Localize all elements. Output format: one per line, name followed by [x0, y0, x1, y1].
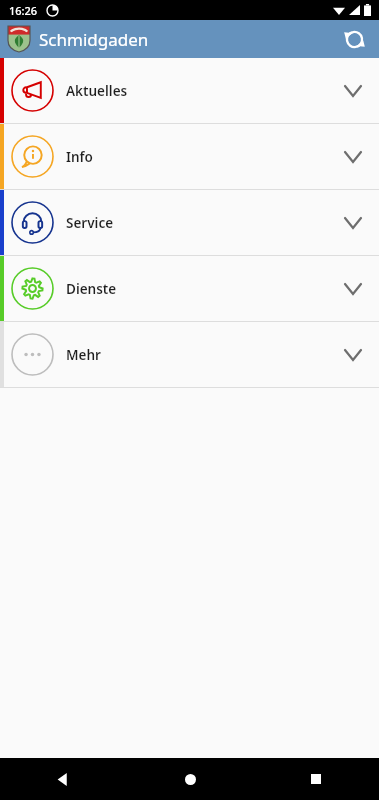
button[interactable]: Service	[0, 190, 379, 255]
button[interactable]: Startbildschirm	[127, 758, 253, 800]
staticText: Aktuelles	[66, 82, 128, 100]
staticText: Service	[66, 214, 114, 232]
button[interactable]: Info	[0, 124, 379, 189]
button[interactable]: Mehr	[0, 322, 379, 387]
button[interactable]: Aktualisieren	[337, 22, 371, 56]
staticText: Mehr	[66, 346, 101, 364]
button[interactable]: Übersicht	[253, 758, 379, 800]
button[interactable]: Zurück	[0, 758, 127, 800]
button[interactable]: Aktuelles	[0, 58, 379, 123]
staticText: Info	[66, 148, 93, 166]
staticText: Dienste	[66, 280, 117, 298]
staticText: 16:26	[9, 3, 38, 18]
button[interactable]: Dienste	[0, 256, 379, 321]
staticText: Schmidgaden	[39, 28, 149, 51]
